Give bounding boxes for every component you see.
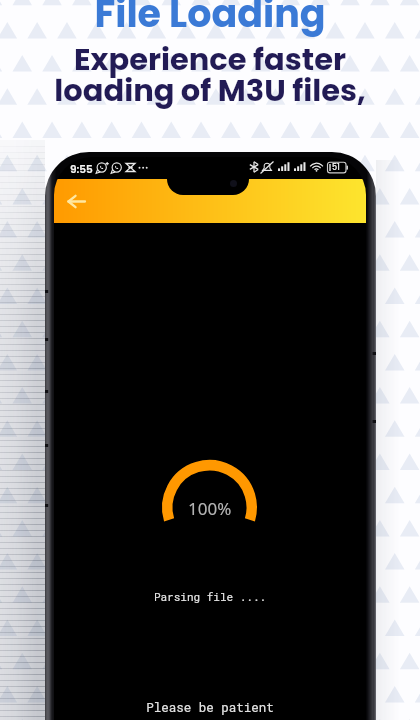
staticText: Parsing file ....	[54, 589, 366, 604]
staticText: File Loading	[0, 0, 420, 40]
staticText: Please be patient	[54, 699, 366, 715]
button[interactable]: Back	[61, 186, 91, 216]
staticText: 100%	[188, 497, 232, 520]
staticText: 51	[332, 162, 340, 173]
staticText: 9:55	[70, 162, 93, 177]
staticText: Experience faster loading of M3U files,	[0, 38, 420, 111]
